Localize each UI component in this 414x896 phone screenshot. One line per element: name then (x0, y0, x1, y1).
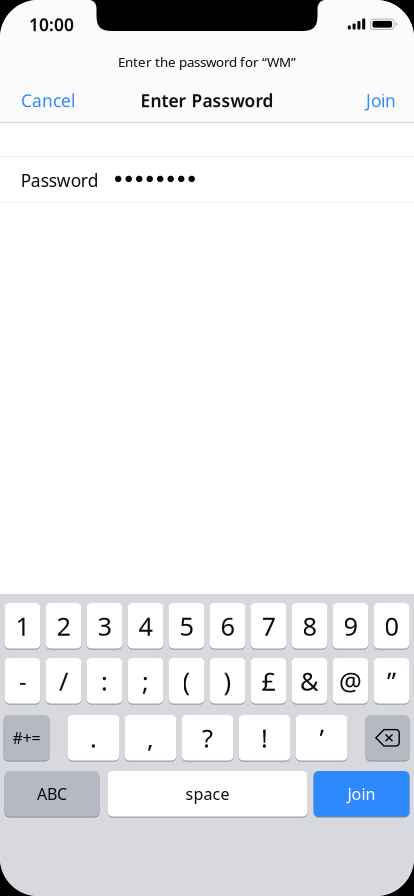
button[interactable]: at (332, 658, 368, 705)
button[interactable]: semicolon (127, 658, 163, 705)
button[interactable]: 3 (86, 603, 122, 650)
staticText: ” (387, 664, 396, 698)
button[interactable]: Delete (365, 715, 409, 762)
staticText: ’ (319, 721, 323, 755)
button[interactable]: 4 (127, 603, 163, 650)
button[interactable]: left parenthesis (168, 658, 204, 705)
staticText: 6 (220, 609, 234, 643)
button[interactable]: Join (313, 771, 409, 818)
staticText: & (300, 664, 319, 698)
staticText: / (59, 664, 68, 698)
staticText: £ (261, 664, 275, 698)
button[interactable]: quote (373, 658, 409, 705)
button[interactable]: question mark (181, 715, 233, 762)
staticText: 10:00 (29, 13, 74, 36)
staticText: 0 (384, 609, 398, 643)
staticText: Join (366, 89, 396, 112)
staticText: Enter the password for “WM” (118, 53, 296, 71)
staticText: Cancel (21, 89, 75, 112)
button[interactable]: period (67, 715, 119, 762)
button[interactable]: exclamation mark (238, 715, 290, 762)
button[interactable]: 5 (168, 603, 204, 650)
staticText: Enter Password (140, 89, 273, 112)
staticText: ) (223, 664, 231, 698)
button[interactable]: 2 (45, 603, 81, 650)
staticText: ; (142, 664, 149, 698)
button[interactable]: colon (86, 658, 122, 705)
button[interactable]: slash (45, 658, 81, 705)
staticText: ABC (37, 783, 67, 804)
button[interactable]: 0 (373, 603, 409, 650)
button[interactable]: Password (0, 157, 414, 202)
staticText: . (90, 721, 97, 755)
staticText: ! (261, 721, 268, 755)
staticText: 5 (179, 609, 193, 643)
staticText: Join (347, 783, 375, 804)
button[interactable]: comma (124, 715, 176, 762)
staticText: : (101, 664, 108, 698)
staticText: @ (339, 664, 362, 698)
button[interactable]: ampersand (291, 658, 327, 705)
button[interactable]: right parenthesis (209, 658, 245, 705)
staticText: 8 (302, 609, 316, 643)
button[interactable]: hyphen (4, 658, 40, 705)
staticText: space (185, 783, 229, 804)
button[interactable]: apostrophe (295, 715, 347, 762)
button[interactable]: 1 (4, 603, 40, 650)
button[interactable]: space (107, 771, 307, 818)
staticText: ( (182, 664, 190, 698)
button[interactable]: 6 (209, 603, 245, 650)
staticText: 4 (138, 609, 152, 643)
button[interactable]: Cancel (21, 92, 75, 109)
staticText: 3 (97, 609, 111, 643)
staticText: #+= (12, 727, 40, 748)
staticText: 9 (343, 609, 357, 643)
staticText: - (18, 664, 26, 698)
staticText: , (147, 721, 154, 755)
button[interactable]: 8 (291, 603, 327, 650)
button[interactable]: Join (357, 92, 396, 109)
staticText: 7 (261, 609, 275, 643)
staticText: ? (202, 721, 213, 755)
button[interactable]: pound (250, 658, 286, 705)
button[interactable]: 9 (332, 603, 368, 650)
staticText: 2 (56, 609, 70, 643)
staticText: Password (21, 169, 99, 192)
staticText: 1 (15, 609, 29, 643)
button[interactable]: more symbols (3, 715, 49, 762)
button[interactable]: 7 (250, 603, 286, 650)
button[interactable]: letters (4, 771, 99, 818)
